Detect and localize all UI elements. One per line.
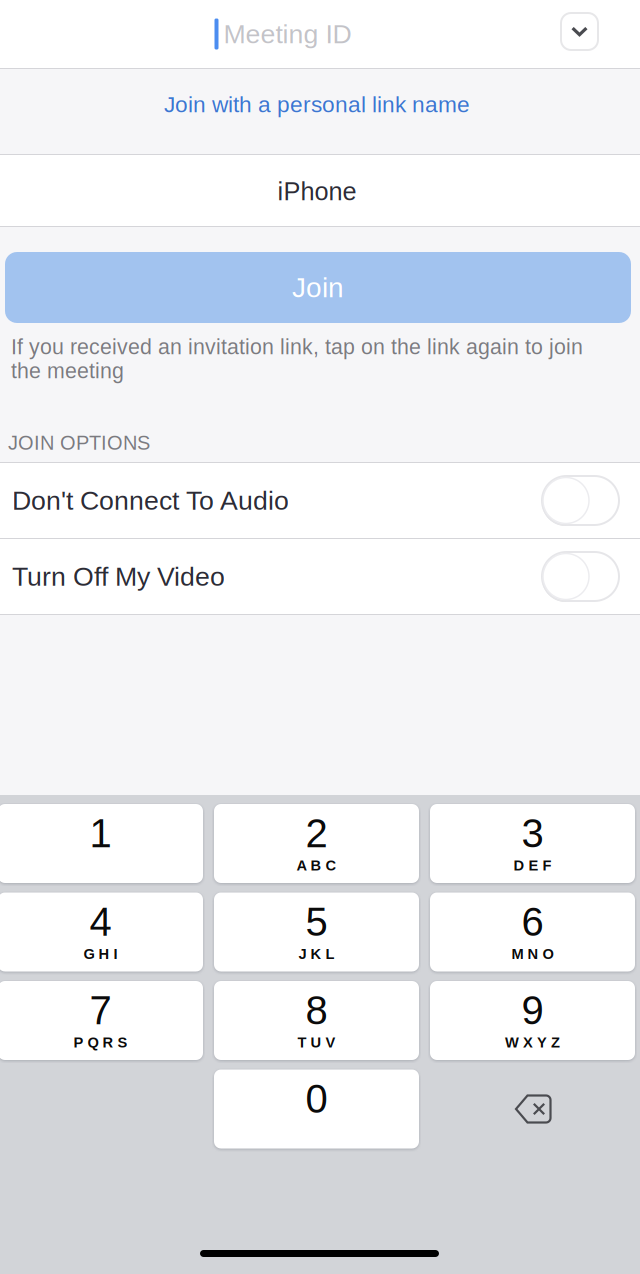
button[interactable]: 6 — [430, 892, 635, 971]
staticText: T U V — [297, 1034, 335, 1051]
staticText: 2 — [305, 811, 327, 856]
staticText: A B C — [296, 857, 336, 874]
button[interactable]: Join with a personal link name — [0, 69, 640, 154]
staticText: 5 — [305, 899, 327, 944]
staticText: Don't Connect To Audio — [12, 486, 289, 515]
button[interactable]: 0 — [214, 1069, 419, 1148]
staticText: iPhone — [277, 177, 356, 206]
staticText: 8 — [305, 988, 327, 1033]
staticText: Join — [292, 272, 344, 303]
button[interactable]: 7 — [0, 981, 203, 1060]
staticText: Turn Off My Video — [12, 562, 225, 591]
staticText: Join with a personal link name — [164, 92, 470, 117]
staticText: If you received an invitation link, tap … — [11, 335, 583, 383]
staticText: G H I — [83, 946, 117, 962]
staticText: 4 — [89, 899, 111, 944]
staticText: W X Y Z — [505, 1034, 560, 1051]
staticText: JOIN OPTIONS — [8, 432, 150, 454]
button[interactable]: 5 — [214, 892, 419, 971]
button[interactable]: 1 — [0, 804, 203, 883]
staticText: J K L — [298, 946, 334, 962]
staticText: 6 — [521, 899, 543, 944]
button[interactable]: iPhone — [0, 155, 640, 226]
staticText: 1 — [89, 811, 111, 856]
staticText: 9 — [521, 988, 543, 1033]
staticText: 7 — [89, 988, 111, 1033]
button[interactable]: Join — [5, 252, 631, 323]
button[interactable]: 3 — [430, 804, 635, 883]
staticText: M N O — [511, 946, 553, 962]
button[interactable]: Delete — [430, 1069, 635, 1148]
staticText: D E F — [513, 857, 551, 874]
button[interactable]: 9 — [430, 981, 635, 1060]
staticText: 0 — [305, 1076, 327, 1121]
button[interactable]: Don't Connect To Audio — [0, 463, 640, 538]
button[interactable]: Turn Off My Video — [0, 539, 640, 614]
button[interactable]: 2 — [214, 804, 419, 883]
staticText: 3 — [521, 811, 543, 856]
staticText: P Q R S — [73, 1034, 127, 1051]
button[interactable]: 8 — [214, 981, 419, 1060]
button[interactable]: 4 — [0, 892, 203, 971]
staticText: Meeting ID — [223, 19, 351, 49]
button[interactable]: Show recent meeting IDs — [561, 13, 598, 50]
